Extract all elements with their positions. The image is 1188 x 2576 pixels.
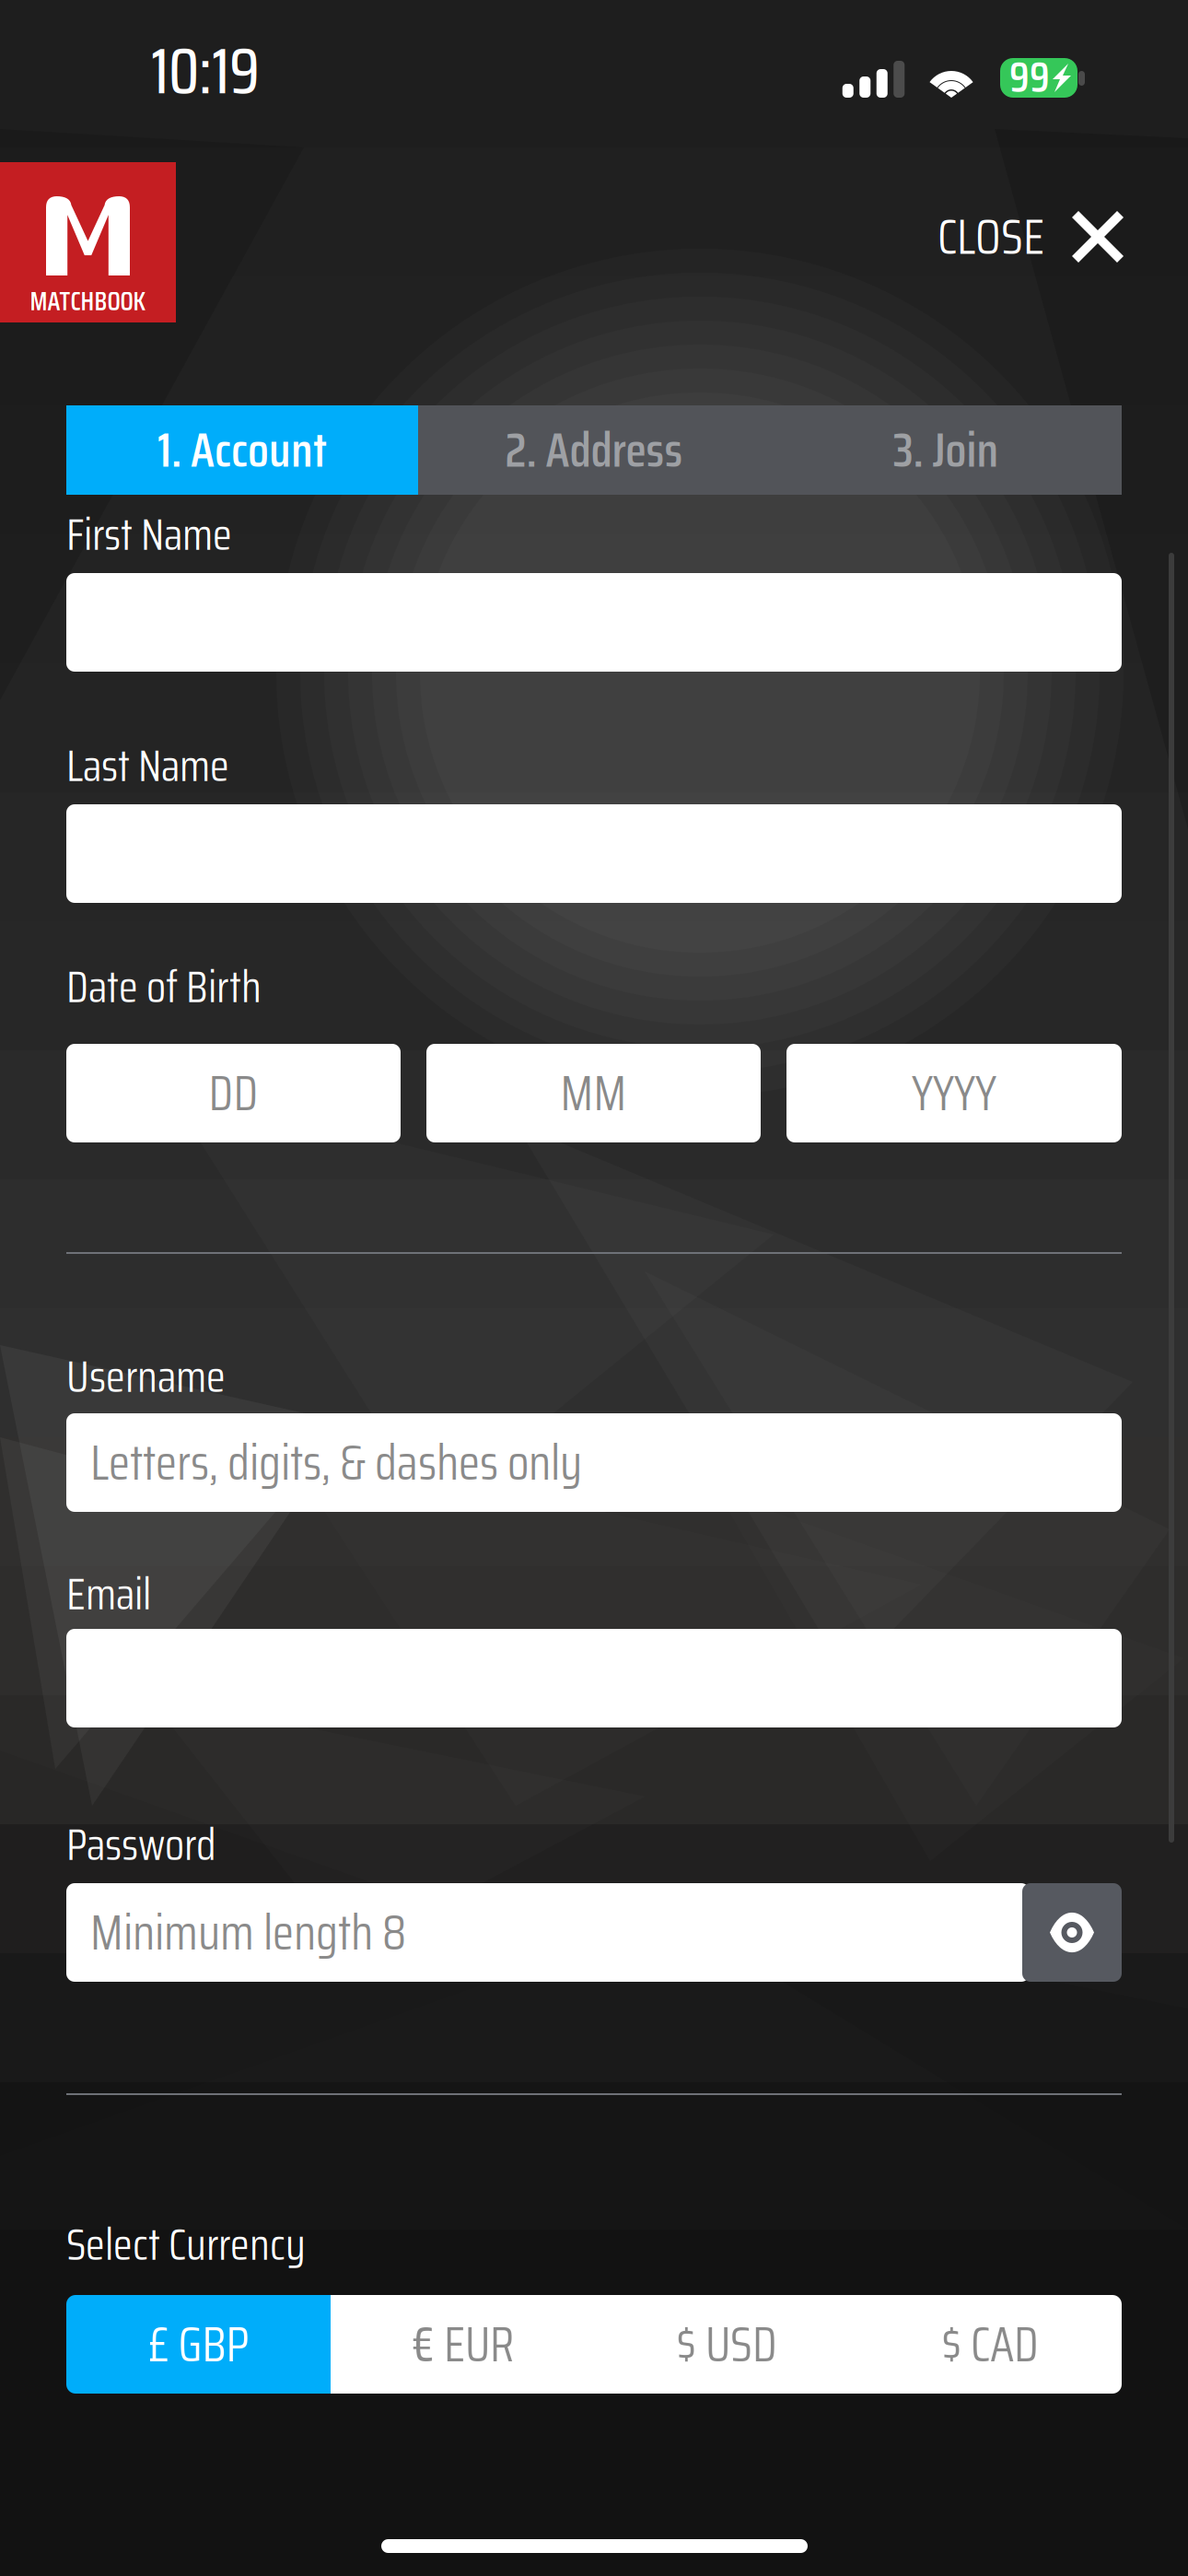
staticText: 2. Address <box>505 412 683 488</box>
button[interactable]: MM <box>426 1044 761 1142</box>
staticText: $ USD <box>676 2306 777 2383</box>
button[interactable] <box>66 1629 1122 1727</box>
button[interactable]: 1. Account <box>66 405 418 495</box>
button[interactable]: € EUR <box>331 2295 595 2394</box>
staticText: MM <box>560 1054 627 1132</box>
staticText: Date of Birth <box>66 952 262 1022</box>
staticText: CLOSE <box>938 198 1044 275</box>
staticText: DD <box>209 1054 258 1132</box>
staticText: Select Currency <box>66 2210 306 2279</box>
button[interactable]: 3. Join <box>770 405 1122 495</box>
staticText: Last Name <box>66 731 229 800</box>
button[interactable]: Letters, digits, & dashes only <box>66 1413 1122 1512</box>
button[interactable]: DD <box>66 1044 401 1142</box>
button[interactable]: $ USD <box>595 2295 858 2394</box>
staticText: MATCHBOOK <box>30 281 146 322</box>
staticText: YYYY <box>912 1054 996 1132</box>
button[interactable]: 2. Address <box>418 405 770 495</box>
staticText: Letters, digits, & dashes only <box>90 1424 582 1501</box>
button[interactable]: YYYY <box>786 1044 1122 1142</box>
staticText: Email <box>66 1559 151 1629</box>
staticText: Password <box>66 1810 216 1879</box>
staticText: 10:19 <box>151 21 260 121</box>
staticText: First Name <box>66 500 232 569</box>
staticText: £ GBP <box>148 2306 249 2383</box>
staticText: $ CAD <box>941 2306 1039 2383</box>
button[interactable]: Show password <box>1022 1883 1122 1982</box>
button[interactable]: £ GBP <box>66 2295 331 2394</box>
staticText: € EUR <box>412 2306 514 2383</box>
staticText: 1. Account <box>157 412 327 488</box>
staticText: 99 <box>1009 44 1050 110</box>
button[interactable]: CLOSE <box>921 205 1124 269</box>
button[interactable] <box>66 804 1122 903</box>
staticText: Username <box>66 1342 226 1411</box>
button[interactable] <box>66 573 1122 672</box>
staticText: Minimum length 8 <box>90 1894 406 1971</box>
button[interactable]: Minimum length 8 <box>66 1883 1030 1982</box>
staticText: 3. Join <box>893 412 999 488</box>
button[interactable]: $ CAD <box>858 2295 1122 2394</box>
